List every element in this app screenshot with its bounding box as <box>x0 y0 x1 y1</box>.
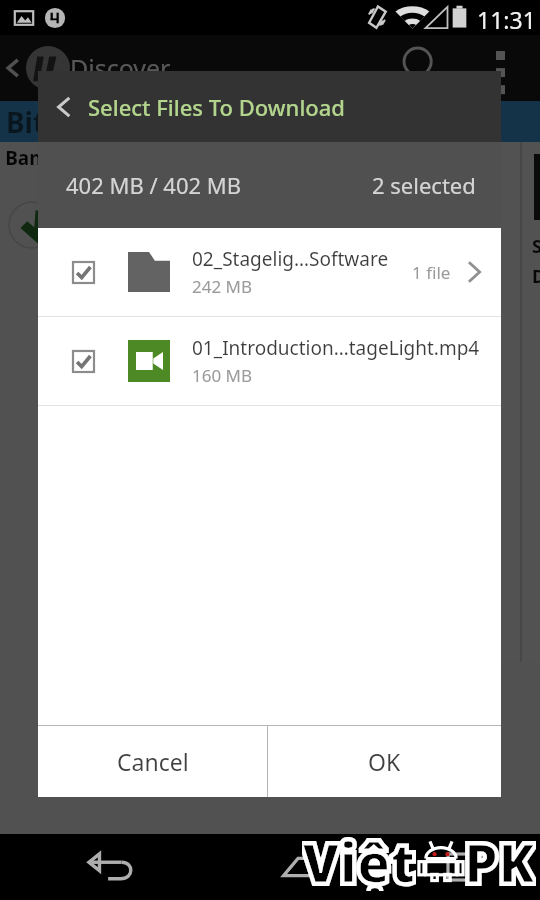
staticText: Discover <box>70 51 171 85</box>
button[interactable]: 01_Introduction…tageLight.mp4 <box>38 317 501 405</box>
button[interactable]: Home <box>222 834 381 900</box>
staticText: t Band <box>0 145 54 171</box>
staticText: Việt <box>302 825 416 891</box>
staticText: BitTorrent Bundle <box>6 103 254 141</box>
button[interactable]: OK <box>268 726 501 797</box>
staticText: PK <box>464 825 536 891</box>
staticText: 02_Stagelig…Software <box>192 246 389 272</box>
staticText: 2 selected <box>372 170 476 200</box>
staticText: S <box>532 234 540 259</box>
button[interactable]: 02_Stagelig…Software <box>38 228 501 316</box>
button[interactable]: Cancel <box>38 726 267 797</box>
staticText: Cancel <box>117 746 189 777</box>
staticText: Việt <box>302 825 416 891</box>
staticText: D <box>532 264 540 289</box>
staticText: PK <box>464 825 536 891</box>
staticText: OK <box>368 746 401 777</box>
staticText: Việt <box>302 825 416 891</box>
staticText: 1 file <box>412 261 451 284</box>
staticText: PK <box>464 825 536 891</box>
staticText: 160 MB <box>192 364 253 387</box>
staticText: Select Files To Download <box>88 92 346 122</box>
staticText: 11:31 <box>477 4 536 35</box>
staticText: 01_Introduction…tageLight.mp4 <box>192 335 480 361</box>
button[interactable]: Recents <box>381 834 540 900</box>
staticText: 402 MB / 402 MB <box>66 170 242 200</box>
staticText: 242 MB <box>192 275 253 298</box>
button[interactable]: Back <box>0 834 222 900</box>
button[interactable]: Back <box>38 71 88 142</box>
